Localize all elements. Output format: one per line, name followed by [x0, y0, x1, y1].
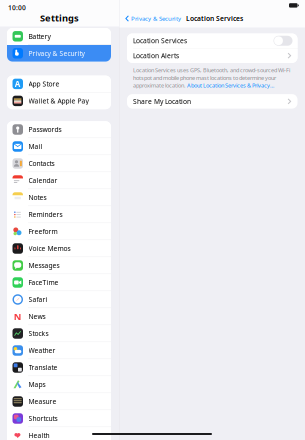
button[interactable]: FaceTime: [7, 274, 111, 291]
button[interactable]: Freeform: [7, 223, 111, 240]
staticText: Weather: [28, 346, 55, 355]
staticText: Location Services: [186, 14, 243, 23]
button[interactable]: Wallet & Apple Pay: [7, 93, 111, 109]
button[interactable]: A: [7, 76, 111, 92]
staticText: Freeform: [28, 227, 57, 236]
staticText: App Store: [28, 79, 59, 88]
staticText: Translate: [28, 363, 57, 372]
button[interactable]: Passwords: [7, 121, 111, 138]
button[interactable]: Notes: [7, 189, 111, 206]
staticText: Location Alerts: [133, 51, 179, 60]
staticText: approximate location.: [133, 82, 187, 89]
button[interactable]: Health: [7, 427, 111, 440]
staticText: Share My Location: [133, 97, 191, 106]
button[interactable]: Stocks: [7, 325, 111, 342]
staticText: News: [28, 312, 45, 321]
button[interactable]: Calendar: [7, 172, 111, 189]
staticText: Shortcuts: [28, 414, 57, 423]
staticText: N: [14, 310, 22, 323]
staticText: 10:00: [8, 3, 26, 12]
staticText: Mail: [28, 142, 42, 151]
button[interactable]: Messages: [7, 257, 111, 274]
staticText: Location Services uses GPS, Bluetooth, a…: [133, 66, 290, 74]
staticText: Calendar: [28, 176, 57, 185]
button[interactable]: Reminders: [7, 206, 111, 223]
button[interactable]: Shortcuts: [7, 410, 111, 427]
staticText: Privacy & Security: [28, 49, 84, 58]
button[interactable]: Safari: [7, 291, 111, 308]
staticText: Settings: [40, 12, 79, 24]
button[interactable]: Location Alerts: [127, 48, 297, 63]
staticText: Safari: [28, 295, 47, 304]
button[interactable]: Weather: [7, 342, 111, 359]
staticText: Privacy & Security: [131, 14, 181, 22]
button[interactable]: Contacts: [7, 155, 111, 172]
staticText: Notes: [28, 193, 46, 202]
button[interactable]: Measure: [7, 393, 111, 410]
button[interactable]: Location Services: [127, 33, 297, 48]
staticText: Messages: [28, 261, 59, 270]
staticText: Health: [28, 431, 49, 440]
button[interactable]: Mail: [7, 138, 111, 155]
staticText: About Location Services & Privacy…: [187, 82, 274, 89]
button[interactable]: About Location Services & Privacy…: [187, 82, 274, 89]
button[interactable]: Privacy & Security: [7, 45, 111, 62]
button[interactable]: N: [7, 308, 111, 325]
button[interactable]: Maps: [7, 376, 111, 393]
button[interactable]: Privacy & Security: [123, 12, 183, 24]
staticText: FaceTime: [28, 278, 58, 287]
staticText: Maps: [28, 380, 45, 389]
staticText: hotspot and mobile phone mast locations …: [133, 74, 276, 81]
button[interactable]: Battery: [7, 28, 111, 45]
staticText: Stocks: [28, 329, 48, 338]
staticText: Location Services: [133, 36, 187, 45]
button[interactable]: Voice Memos: [7, 240, 111, 257]
staticText: Voice Memos: [28, 244, 70, 253]
button[interactable]: Share My Location: [127, 94, 297, 109]
staticText: A: [15, 79, 21, 89]
staticText: Contacts: [28, 159, 54, 168]
staticText: Wallet & Apple Pay: [28, 96, 88, 105]
staticText: Passwords: [28, 125, 61, 134]
staticText: Measure: [28, 397, 56, 406]
staticText: Reminders: [28, 210, 62, 219]
button[interactable]: Translate: [7, 359, 111, 376]
staticText: Battery: [28, 32, 50, 41]
